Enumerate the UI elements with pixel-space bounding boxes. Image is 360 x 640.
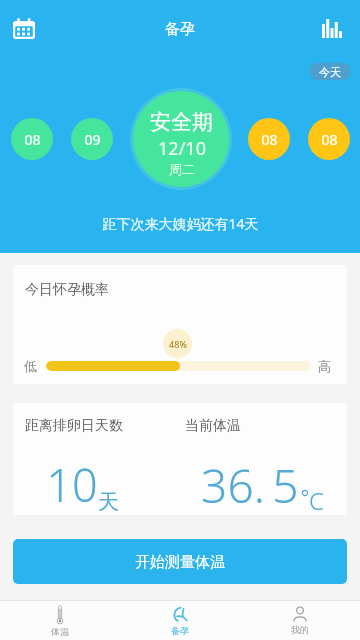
staticText: 距离排卵日天数 (25, 417, 123, 435)
staticText: 12/10 (158, 136, 206, 161)
staticText: 开始测量体温 (135, 553, 225, 572)
staticText: 5 (272, 454, 299, 515)
staticText: C (309, 484, 324, 515)
staticText: 10 (46, 454, 98, 515)
button[interactable]: 08 (11, 118, 53, 160)
staticText: 48% (169, 338, 187, 350)
staticText: 低 (24, 358, 37, 374)
button[interactable]: 08 (248, 118, 290, 160)
staticText: 备孕 (171, 625, 189, 636)
staticText: 天 (98, 489, 119, 515)
staticText: 09 (84, 130, 101, 149)
staticText: 今天 (319, 65, 341, 79)
staticText: 体温 (51, 626, 69, 637)
button[interactable]: Calendar (9, 14, 39, 44)
staticText: 今日怀孕概率 (25, 281, 109, 299)
staticText: 我的 (291, 624, 309, 635)
button[interactable]: 我的 (240, 601, 360, 640)
button[interactable]: Statistics (317, 13, 347, 43)
staticText: 高 (318, 358, 331, 374)
staticText: 周二 (169, 161, 195, 177)
button[interactable]: 安全期 (133, 91, 229, 187)
staticText: 安全期 (150, 109, 213, 135)
button[interactable]: 09 (71, 118, 113, 160)
staticText: 36. (201, 454, 265, 515)
button[interactable]: 体温 (0, 601, 120, 640)
staticText: 08 (261, 130, 278, 149)
staticText: 08 (24, 130, 41, 149)
staticText: 距下次来大姨妈还有14天 (102, 214, 259, 233)
button[interactable]: 开始测量体温 (13, 539, 347, 584)
staticText: 当前体温 (185, 417, 241, 435)
staticText: 08 (321, 130, 338, 149)
button[interactable]: 08 (308, 118, 350, 160)
button[interactable]: 备孕 (120, 601, 240, 640)
button[interactable]: 今天 (310, 63, 350, 80)
staticText: 备孕 (165, 20, 195, 39)
